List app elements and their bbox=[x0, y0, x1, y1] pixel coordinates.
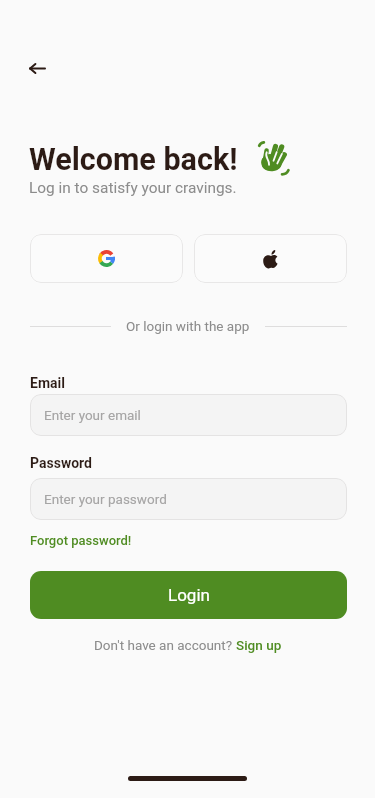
staticText: Sign up bbox=[236, 637, 282, 653]
button[interactable]: Enter your password bbox=[30, 478, 347, 520]
staticText: Enter your email bbox=[44, 407, 141, 423]
staticText: Password bbox=[30, 455, 92, 471]
staticText: Forgot password! bbox=[30, 533, 132, 548]
button[interactable]: Sign in with Apple bbox=[194, 234, 347, 283]
button[interactable]: Back bbox=[19, 50, 55, 86]
button[interactable]: Login bbox=[30, 571, 347, 619]
button[interactable]: Sign in with Google bbox=[30, 234, 183, 283]
staticText: Welcome back! bbox=[29, 142, 238, 178]
staticText: Log in to satisfy your cravings. bbox=[29, 179, 237, 197]
button[interactable]: Forgot password! bbox=[30, 533, 132, 548]
staticText: Or login with the app bbox=[126, 318, 250, 334]
staticText: Email bbox=[30, 375, 65, 391]
staticText: Don't have an account? bbox=[94, 637, 236, 653]
button[interactable]: Enter your email bbox=[30, 394, 347, 436]
button[interactable]: Sign up bbox=[236, 637, 282, 653]
staticText: Enter your password bbox=[44, 491, 167, 507]
staticText: Login bbox=[168, 585, 210, 605]
